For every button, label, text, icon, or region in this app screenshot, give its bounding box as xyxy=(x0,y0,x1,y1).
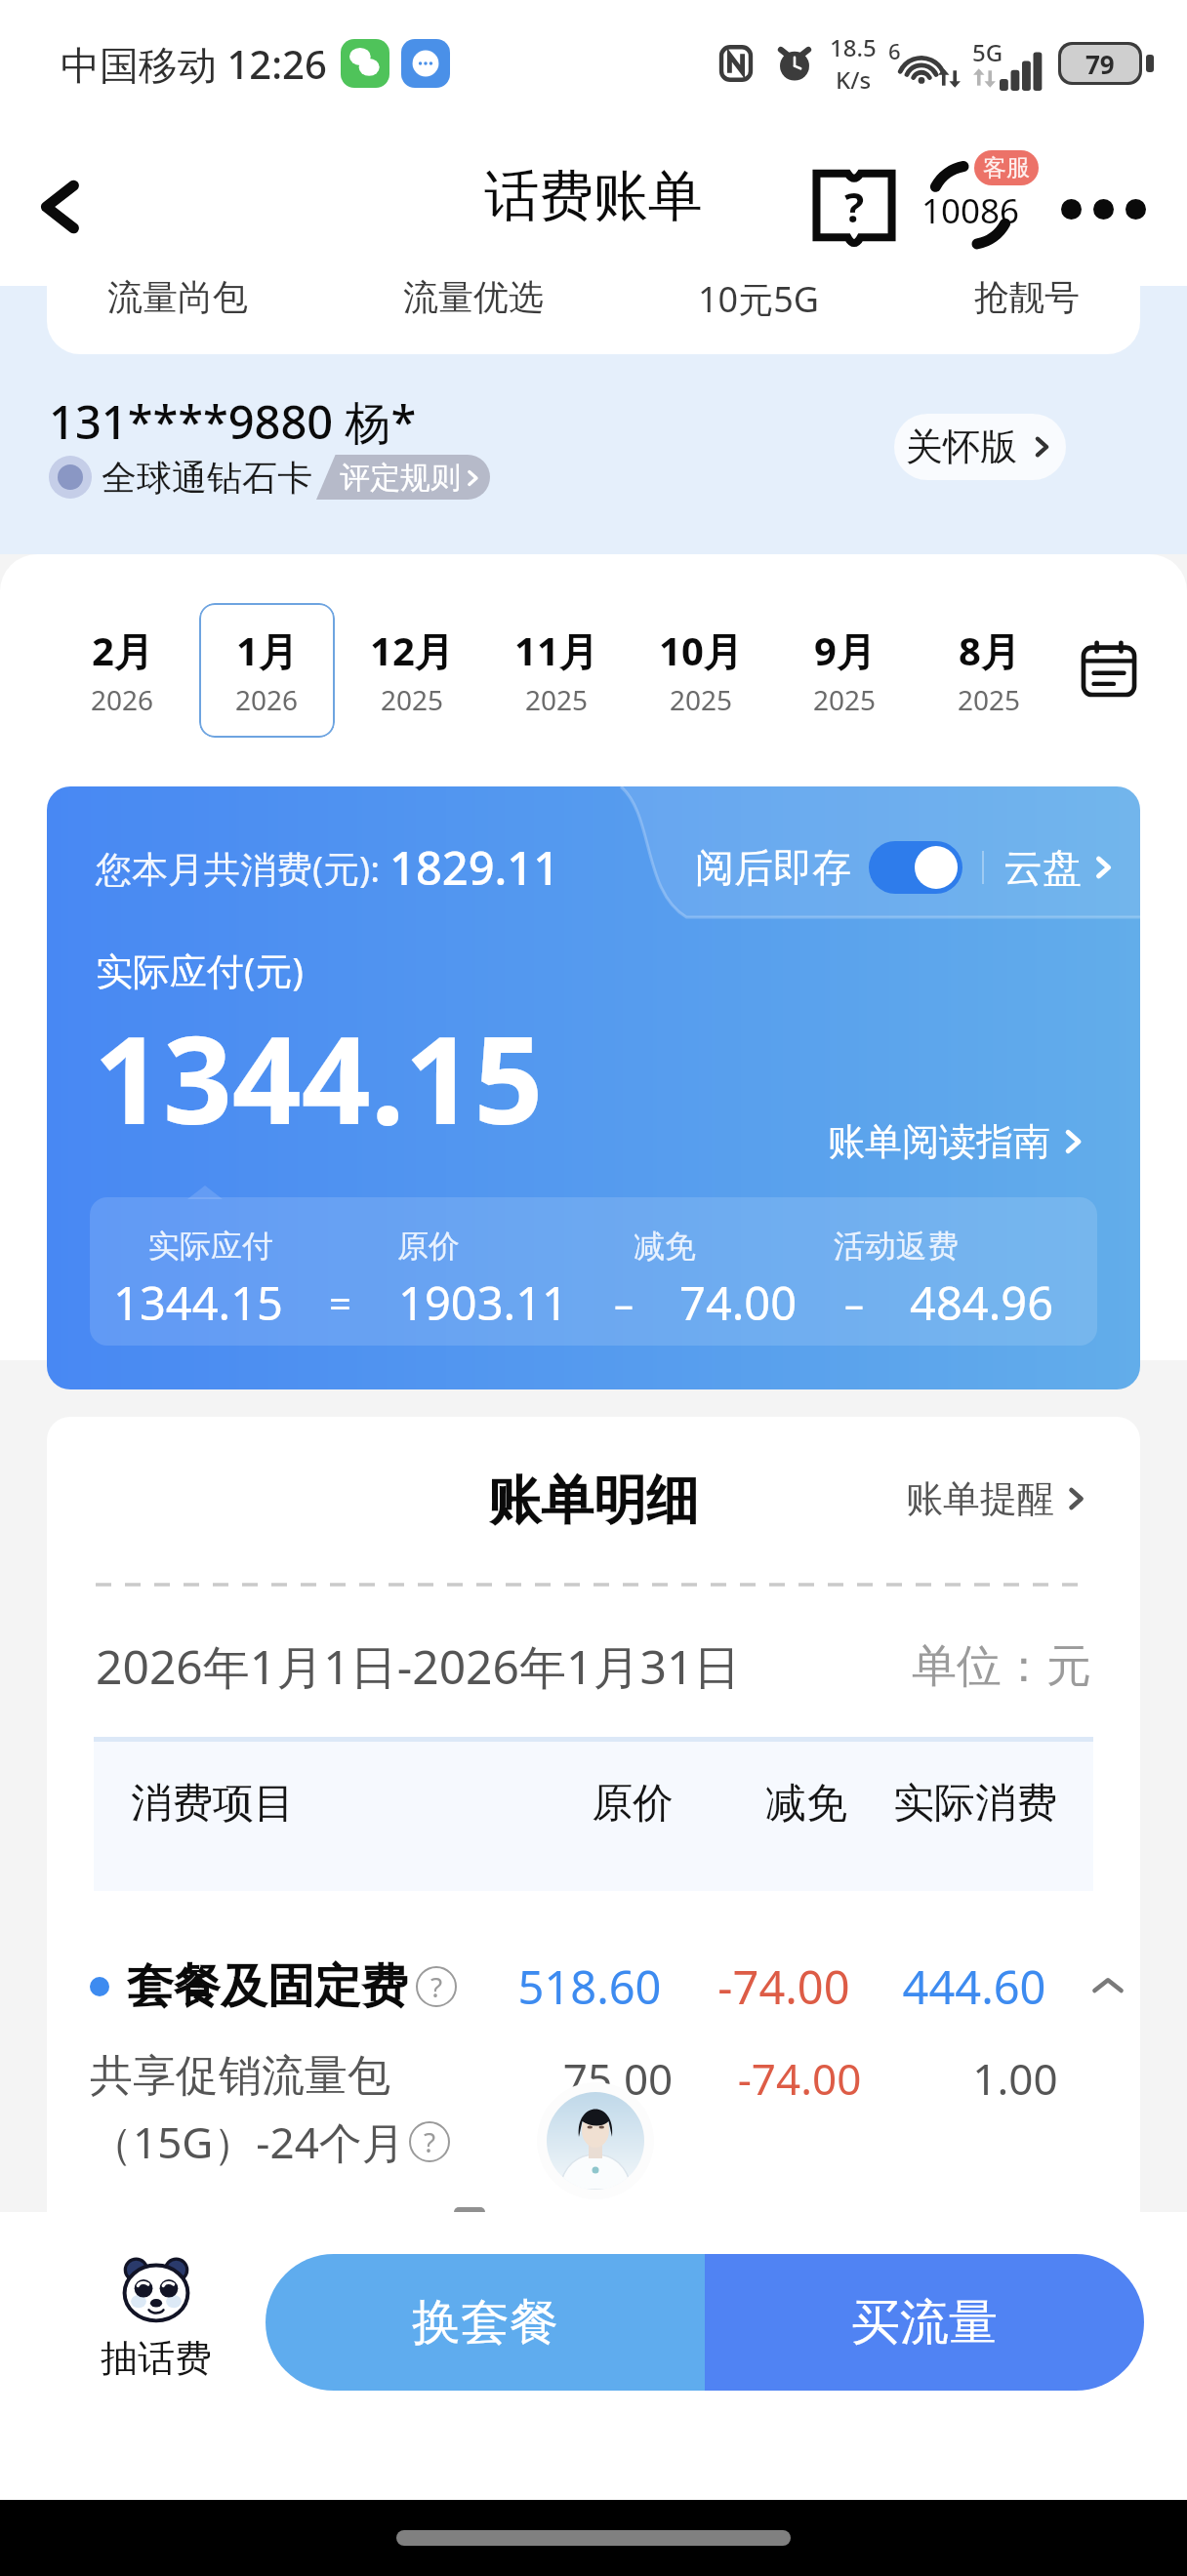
button[interactable]: Help xyxy=(800,154,908,262)
button[interactable]: Virtual assistant xyxy=(537,2082,654,2199)
staticText: 9月 xyxy=(814,624,876,677)
staticText: – xyxy=(614,1276,634,1329)
staticText: 1344.15 xyxy=(94,994,544,1159)
staticText: 10086 xyxy=(921,187,1020,234)
staticText: 流量尚包 xyxy=(107,275,248,319)
staticText: = xyxy=(329,1276,351,1329)
button[interactable]: 换套餐 xyxy=(266,2254,705,2391)
staticText: 您本月共消费(元): xyxy=(96,843,389,893)
staticText: – xyxy=(844,1276,864,1329)
staticText: 2025 xyxy=(958,681,1021,718)
button[interactable]: 11月 xyxy=(488,603,624,738)
staticText: -74.00 xyxy=(688,1955,880,2018)
staticText: 74.00 xyxy=(679,1271,798,1334)
staticText: 8月 xyxy=(959,624,1020,677)
staticText: 2025 xyxy=(525,681,589,718)
button[interactable]: Toggle auto save xyxy=(869,841,962,894)
button[interactable]: 8月 xyxy=(921,603,1057,738)
staticText: 抽话费 xyxy=(101,2335,212,2382)
staticText: 1344.15 xyxy=(113,1271,283,1334)
button[interactable]: 账单提醒 xyxy=(906,1475,1089,1522)
staticText: K/s xyxy=(836,63,872,96)
staticText: 6 xyxy=(888,36,901,65)
staticText: 2026年1月1日-2026年1月31日 xyxy=(96,1634,741,1699)
staticText: 关怀版 xyxy=(906,423,1017,470)
staticText: 75.00 xyxy=(522,2049,714,2108)
button[interactable]: Back xyxy=(21,166,103,248)
staticText: 10元5G xyxy=(698,275,819,323)
staticText: 1月 xyxy=(236,624,298,677)
staticText: 减免 xyxy=(724,1778,888,1830)
staticText: 2025 xyxy=(381,681,444,718)
staticText: 套餐及固定费 xyxy=(127,1957,408,2016)
staticText: 买流量 xyxy=(851,2292,998,2354)
button[interactable]: 10月 xyxy=(633,603,768,738)
button[interactable]: 9月 xyxy=(777,603,913,738)
staticText: 账单明细 xyxy=(488,1468,699,1534)
staticText: 2026 xyxy=(91,681,154,718)
staticText: 账单提醒 xyxy=(906,1475,1054,1522)
staticText: 2025 xyxy=(813,681,877,718)
staticText: 原价 xyxy=(307,1227,551,1266)
staticText: 评定规则 xyxy=(340,459,461,497)
staticText: 共享促销流量包 xyxy=(90,2049,390,2103)
staticText: 换套餐 xyxy=(412,2292,558,2354)
button[interactable]: 云盘 xyxy=(1003,843,1117,892)
staticText: 实际应付(元) xyxy=(96,945,304,995)
staticText: 444.60 xyxy=(879,1955,1070,2018)
staticText: 单位：元 xyxy=(912,1638,1091,1695)
button[interactable]: More options xyxy=(1048,154,1158,263)
button[interactable]: 关怀版 xyxy=(894,414,1066,480)
button[interactable]: 12月 xyxy=(344,603,479,738)
staticText: 消费项目 xyxy=(131,1778,295,1830)
staticText: 实际消费 xyxy=(888,1778,1062,1830)
button[interactable]: 账单阅读指南 xyxy=(828,1118,1087,1165)
staticText: 中国移动 12:26 xyxy=(61,37,327,91)
button[interactable]: 抽话费 xyxy=(82,2259,230,2382)
staticText: 10月 xyxy=(659,624,743,677)
staticText: 全球通钻石卡 xyxy=(102,456,312,500)
staticText: 云盘 xyxy=(1003,843,1082,892)
staticText: 客服 xyxy=(983,153,1030,182)
staticText: （15G）-24个月 xyxy=(90,2113,405,2171)
staticText: 2026 xyxy=(235,681,299,718)
staticText: ? xyxy=(844,179,865,234)
staticText: -74.00 xyxy=(704,2049,895,2108)
button[interactable]: Customer service 10086 xyxy=(916,148,1025,258)
staticText: 抢靓号 xyxy=(974,275,1080,319)
staticText: 1903.11 xyxy=(398,1271,568,1334)
staticText: 活动返费 xyxy=(779,1227,1013,1266)
staticText: 1829.11 xyxy=(389,836,560,899)
button[interactable]: 买流量 xyxy=(705,2254,1144,2391)
staticText: 实际应付 xyxy=(115,1227,307,1266)
staticText: 流量优选 xyxy=(403,275,544,319)
button[interactable]: 1月 xyxy=(199,603,335,738)
staticText: 账单阅读指南 xyxy=(828,1118,1050,1165)
staticText: 减免 xyxy=(551,1227,779,1266)
staticText: 518.60 xyxy=(494,1955,685,2018)
staticText: ? xyxy=(430,1968,443,2005)
staticText: 484.96 xyxy=(910,1271,1054,1334)
staticText: 131****9880 杨* xyxy=(49,390,417,453)
staticText: 1.00 xyxy=(920,2049,1111,2108)
staticText: 5G xyxy=(972,36,1003,68)
staticText: 11月 xyxy=(514,624,598,677)
staticText: 2月 xyxy=(92,624,153,677)
staticText: 阅后即存 xyxy=(695,843,851,892)
staticText: 18.5 xyxy=(830,31,877,63)
staticText: ? xyxy=(424,2123,436,2160)
staticText: 79 xyxy=(1085,47,1115,81)
staticText: 原价 xyxy=(541,1778,724,1830)
staticText: 话费账单 xyxy=(484,162,703,231)
button[interactable]: Pick month xyxy=(1070,630,1148,708)
button[interactable]: 2月 xyxy=(55,603,190,738)
staticText: 2025 xyxy=(670,681,733,718)
staticText: 12月 xyxy=(370,624,454,677)
button[interactable]: 套餐及固定费 xyxy=(90,1952,1130,2022)
